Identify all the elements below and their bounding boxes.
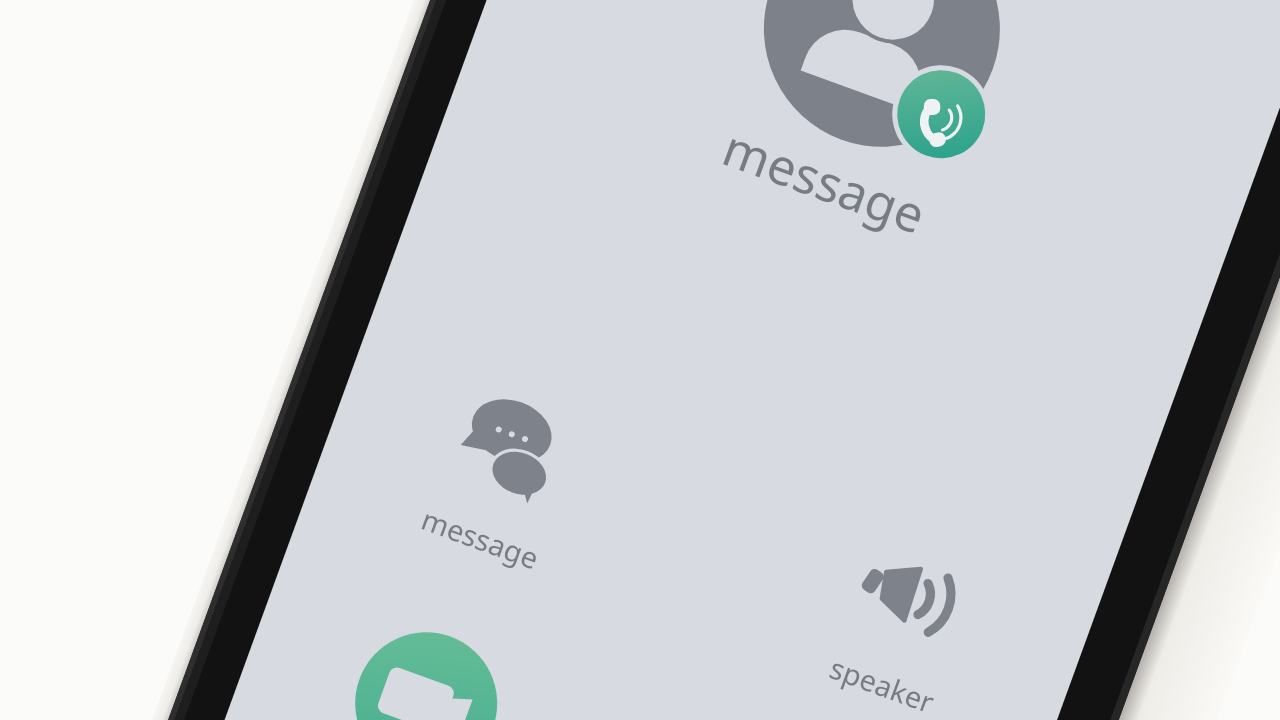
button[interactable]: In-call options xyxy=(0,0,1280,720)
